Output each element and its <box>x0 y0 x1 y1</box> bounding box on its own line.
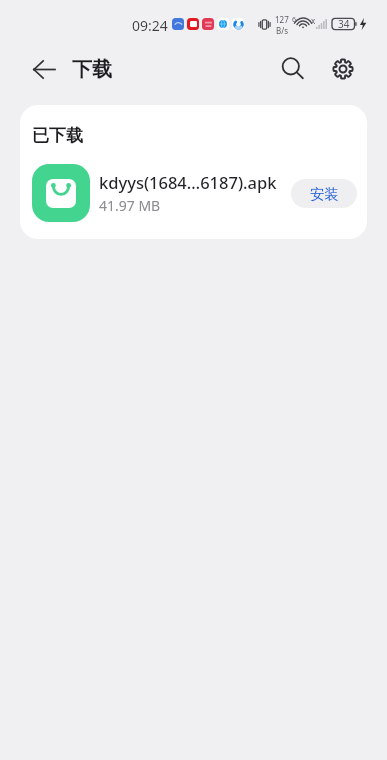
button[interactable]: 安装 <box>291 179 357 208</box>
staticText: 下载 <box>72 57 112 82</box>
button[interactable]: Back <box>26 51 62 87</box>
staticText: 已下载 <box>32 125 83 146</box>
staticText: 127 <box>275 14 289 25</box>
staticText: 6 <box>292 15 297 25</box>
button[interactable]: Settings <box>324 50 362 88</box>
staticText: 41.97 MB <box>99 196 161 215</box>
staticText: kdyys(1684…6187).apk <box>99 171 277 193</box>
staticText: 安装 <box>310 185 339 203</box>
staticText: x <box>311 15 316 26</box>
staticText: 34 <box>338 17 350 31</box>
staticText: B/s <box>276 25 289 34</box>
staticText: 09:24 <box>132 16 168 32</box>
button[interactable]: kdyys(1684…6187).apk <box>20 158 367 228</box>
button[interactable]: Search <box>274 50 312 88</box>
